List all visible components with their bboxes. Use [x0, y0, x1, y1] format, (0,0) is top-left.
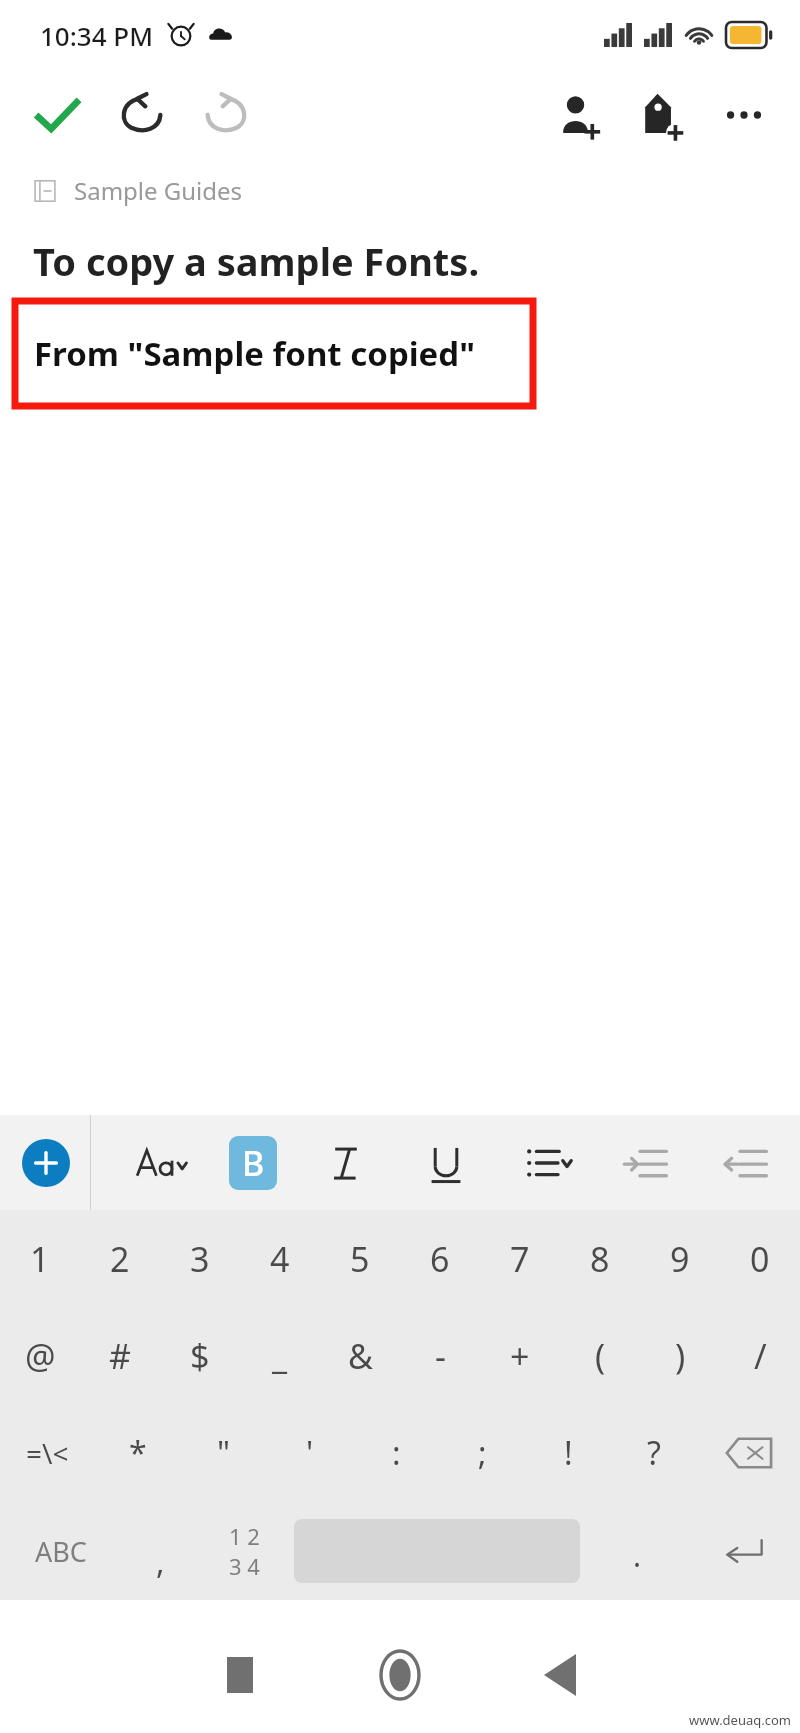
staticText: ( — [595, 1333, 606, 1379]
staticText: 8 — [590, 1236, 610, 1282]
button[interactable]: ' — [267, 1404, 353, 1502]
button[interactable]: 9 — [640, 1210, 720, 1307]
staticText: / — [754, 1333, 767, 1379]
staticText: * — [129, 1431, 147, 1475]
staticText: @ — [25, 1333, 56, 1379]
staticText: 9 — [670, 1236, 690, 1282]
staticText: =\< — [26, 1434, 69, 1472]
button[interactable]: Italic — [316, 1134, 376, 1192]
staticText: ' — [306, 1431, 314, 1475]
button[interactable]: Underline — [416, 1134, 476, 1192]
button[interactable]: Undo — [114, 86, 172, 144]
staticText: ) — [675, 1333, 686, 1379]
button[interactable]: : — [353, 1404, 439, 1502]
button[interactable]: Recents — [160, 1616, 320, 1733]
button[interactable]: Enter — [688, 1502, 800, 1600]
staticText: 0 — [750, 1236, 770, 1282]
button[interactable]: 7 — [480, 1210, 560, 1307]
staticText: ! — [564, 1431, 573, 1475]
staticText: 3 4 — [229, 1551, 260, 1581]
button[interactable]: ABC — [0, 1502, 121, 1600]
button[interactable]: 4 — [240, 1210, 320, 1307]
button[interactable]: =\< — [0, 1404, 95, 1502]
button[interactable]: 5 — [320, 1210, 400, 1307]
button[interactable]: 1 2 — [200, 1502, 288, 1600]
button[interactable]: Increase indent — [616, 1134, 676, 1192]
button[interactable]: 8 — [560, 1210, 640, 1307]
staticText: " — [217, 1431, 231, 1475]
button[interactable]: @ — [0, 1307, 80, 1404]
button[interactable]: / — [720, 1307, 800, 1404]
button[interactable]: ; — [439, 1404, 525, 1502]
button[interactable]: . — [586, 1502, 688, 1600]
staticText: 6 — [430, 1236, 450, 1282]
button[interactable]: ) — [640, 1307, 720, 1404]
staticText: # — [109, 1333, 131, 1379]
button[interactable]: + — [480, 1307, 560, 1404]
button[interactable]: & — [320, 1307, 400, 1404]
staticText: 4 — [270, 1236, 290, 1282]
button[interactable]: Font size — [130, 1134, 190, 1192]
staticText: 1 — [30, 1236, 50, 1282]
button[interactable]: " — [181, 1404, 267, 1502]
button[interactable]: $ — [160, 1307, 240, 1404]
button[interactable]: * — [95, 1404, 181, 1502]
staticText: 2 — [110, 1236, 130, 1282]
button[interactable]: _ — [240, 1307, 320, 1404]
button[interactable]: 6 — [400, 1210, 480, 1307]
staticText: From "Sample font copied" — [34, 331, 475, 376]
staticText: 7 — [510, 1236, 530, 1282]
staticText: _ — [272, 1333, 288, 1379]
button[interactable]: 0 — [720, 1210, 800, 1307]
staticText: + — [510, 1333, 530, 1379]
button[interactable]: ? — [611, 1404, 697, 1502]
button[interactable]: Add person — [552, 87, 608, 143]
staticText: 5 — [350, 1236, 370, 1282]
button[interactable]: 2 — [80, 1210, 160, 1307]
button[interactable]: - — [400, 1307, 480, 1404]
staticText: - — [435, 1333, 446, 1379]
button[interactable]: Add tag — [634, 87, 690, 143]
staticText: ABC — [35, 1533, 87, 1570]
button[interactable]: Insert — [22, 1139, 70, 1187]
button[interactable]: Done — [28, 86, 86, 144]
button[interactable]: ( — [560, 1307, 640, 1404]
staticText: : — [392, 1431, 401, 1475]
button[interactable]: ! — [525, 1404, 611, 1502]
button[interactable]: Back — [480, 1616, 640, 1733]
button[interactable]: More options — [716, 87, 772, 143]
staticText: 10:34 PM — [40, 18, 154, 53]
staticText: 1 2 — [229, 1521, 260, 1551]
staticText: 3 — [190, 1236, 210, 1282]
button[interactable]: 3 — [160, 1210, 240, 1307]
button[interactable]: Bulleted list — [516, 1134, 576, 1192]
button[interactable]: Decrease indent — [716, 1134, 776, 1192]
button[interactable]: , — [121, 1502, 200, 1600]
button[interactable]: Bold — [229, 1136, 277, 1190]
staticText: , — [156, 1540, 165, 1584]
button[interactable]: Backspace — [697, 1404, 800, 1502]
staticText: www.deuaq.com — [689, 1711, 792, 1729]
staticText: $ — [190, 1333, 210, 1379]
button[interactable]: 1 — [0, 1210, 80, 1307]
button[interactable]: Sample Guides — [30, 174, 243, 207]
staticText: To copy a sample Fonts. — [33, 235, 480, 287]
button[interactable]: # — [80, 1307, 160, 1404]
staticText: Sample Guides — [74, 174, 243, 207]
staticText: ? — [647, 1431, 661, 1475]
button[interactable]: Home — [320, 1616, 480, 1733]
staticText: & — [348, 1333, 373, 1379]
button[interactable]: Redo — [196, 86, 254, 144]
staticText: B — [242, 1140, 265, 1186]
staticText: ; — [478, 1431, 487, 1475]
staticText: . — [633, 1535, 642, 1576]
